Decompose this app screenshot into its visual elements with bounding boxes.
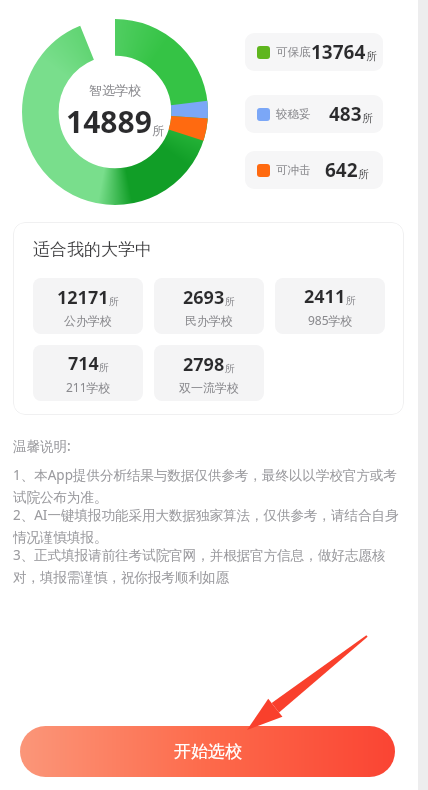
- staticText: 642: [325, 157, 358, 183]
- staticText: 所: [346, 294, 356, 307]
- staticText: 2411: [304, 284, 346, 309]
- staticText: 3、正式填报请前往考试院官网，并根据官方信息，做好志愿核对，填报需谨慎，祝你报考…: [13, 546, 407, 586]
- staticText: 13764: [311, 39, 366, 65]
- staticText: 所: [358, 167, 369, 181]
- button[interactable]: 2693: [154, 278, 264, 334]
- staticText: 开始选校: [174, 741, 242, 762]
- staticText: 2693: [183, 285, 225, 310]
- button[interactable]: 可保底: [245, 33, 383, 71]
- staticText: 所: [225, 362, 235, 375]
- staticText: 所: [366, 49, 373, 63]
- button[interactable]: 可冲击: [245, 151, 383, 189]
- button[interactable]: 较稳妥: [245, 95, 383, 133]
- staticText: 双一流学校: [179, 380, 239, 395]
- staticText: 1、本App提供分析结果与数据仅供参考，最终以以学校官方或考试院公布为准。: [13, 466, 407, 506]
- staticText: 所: [152, 123, 164, 138]
- button[interactable]: 714: [33, 345, 143, 401]
- staticText: 2798: [183, 352, 225, 377]
- staticText: 温馨说明:: [13, 437, 71, 455]
- button[interactable]: 2411: [275, 278, 385, 334]
- staticText: 所: [362, 111, 373, 125]
- staticText: 所: [99, 361, 109, 374]
- staticText: 211学校: [66, 379, 111, 395]
- staticText: 可保底: [276, 45, 311, 59]
- staticText: 民办学校: [185, 313, 233, 328]
- staticText: 可冲击: [276, 163, 311, 177]
- button[interactable]: 开始选校: [20, 726, 395, 777]
- staticText: 985学校: [308, 312, 353, 328]
- staticText: 2、AI一键填报功能采用大数据独家算法，仅供参考，请结合自身情况谨慎填报。: [13, 506, 407, 546]
- button[interactable]: 12171: [33, 278, 143, 334]
- staticText: 14889: [66, 101, 152, 142]
- staticText: 所: [225, 295, 235, 308]
- staticText: 483: [329, 101, 362, 127]
- staticText: 714: [68, 351, 99, 376]
- button[interactable]: 2798: [154, 345, 264, 401]
- staticText: 较稳妥: [276, 107, 311, 121]
- staticText: 所: [109, 295, 119, 308]
- staticText: 公办学校: [64, 313, 112, 328]
- staticText: 12171: [57, 285, 109, 310]
- staticText: 适合我的大学中: [33, 239, 152, 260]
- staticText: 智选学校: [89, 82, 141, 98]
